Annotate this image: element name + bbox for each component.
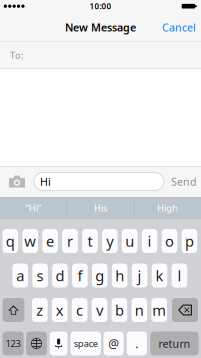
staticText: Hi [40, 174, 51, 189]
staticText: @ [108, 335, 119, 351]
button[interactable]: @ [104, 331, 124, 355]
button[interactable]: . [127, 331, 147, 355]
button[interactable]: 123 [2, 331, 24, 355]
button[interactable]: n [131, 298, 147, 322]
button[interactable]: q [2, 229, 18, 253]
button[interactable]: l [172, 263, 187, 287]
button[interactable]: b [112, 298, 127, 322]
staticText: z [36, 300, 43, 320]
button[interactable]: d [52, 263, 68, 287]
staticText: 123 [6, 337, 21, 350]
staticText: t [87, 231, 92, 251]
staticText: v [96, 300, 103, 320]
staticText: g [95, 266, 104, 285]
button[interactable]: r [62, 229, 78, 253]
button[interactable]: Switch keyboard [26, 331, 47, 355]
staticText: p [185, 231, 194, 251]
staticText: o [165, 231, 174, 251]
staticText: x [56, 300, 64, 320]
button[interactable]: g [92, 263, 108, 287]
staticText: u [125, 231, 134, 251]
button[interactable]: Cancel [157, 15, 201, 39]
staticText: Send [171, 174, 197, 189]
button[interactable]: i [142, 229, 157, 253]
staticText: j [138, 266, 142, 285]
staticText: e [46, 231, 54, 251]
staticText: His [94, 202, 107, 214]
button[interactable]: j [132, 263, 147, 287]
button[interactable]: c [72, 298, 87, 322]
staticText: r [67, 231, 73, 251]
staticText: New Message [65, 20, 136, 34]
staticText: i [148, 231, 152, 251]
button[interactable]: f [72, 263, 88, 287]
staticText: f [77, 266, 82, 285]
button[interactable]: u [122, 229, 137, 253]
button[interactable]: space [71, 331, 101, 355]
button[interactable]: s [32, 263, 48, 287]
button[interactable]: p [182, 229, 197, 253]
button[interactable]: o [162, 229, 177, 253]
staticText: q [6, 231, 15, 251]
button[interactable]: Send [165, 169, 201, 194]
staticText: d [55, 266, 64, 285]
staticText: n [135, 300, 144, 320]
button[interactable]: High [134, 197, 201, 219]
button[interactable]: z [32, 298, 48, 322]
button[interactable]: His [67, 197, 134, 219]
button[interactable]: t [82, 229, 98, 253]
staticText: w [24, 231, 36, 251]
staticText: “Hi” [26, 202, 41, 214]
button[interactable]: x [52, 298, 67, 322]
staticText: High [157, 202, 178, 214]
staticText: k [155, 266, 163, 285]
staticText: c [76, 300, 83, 320]
button[interactable]: a [12, 263, 28, 287]
button[interactable]: Dictate [50, 331, 67, 355]
button[interactable]: “Hi” [0, 197, 66, 219]
button[interactable]: Camera [0, 171, 34, 191]
staticText: y [106, 231, 113, 251]
staticText: l [177, 266, 181, 285]
button[interactable]: return [150, 331, 199, 355]
staticText: To: [10, 49, 24, 61]
button[interactable]: k [152, 263, 167, 287]
button[interactable]: m [151, 298, 167, 322]
button[interactable]: e [42, 229, 58, 253]
staticText: Cancel [162, 20, 196, 34]
button[interactable]: w [22, 229, 38, 253]
button[interactable]: h [112, 263, 127, 287]
staticText: m [152, 300, 166, 320]
button[interactable]: Shift [2, 298, 24, 322]
staticText: s [37, 266, 44, 285]
staticText: a [16, 266, 24, 285]
staticText: space [74, 337, 98, 350]
button[interactable]: y [102, 229, 118, 253]
button[interactable]: Delete [172, 298, 198, 322]
staticText: 10:00 [89, 1, 111, 11]
staticText: . [135, 335, 138, 351]
staticText: return [158, 336, 190, 351]
staticText: h [115, 266, 124, 285]
staticText: b [115, 300, 124, 320]
button[interactable]: v [92, 298, 107, 322]
